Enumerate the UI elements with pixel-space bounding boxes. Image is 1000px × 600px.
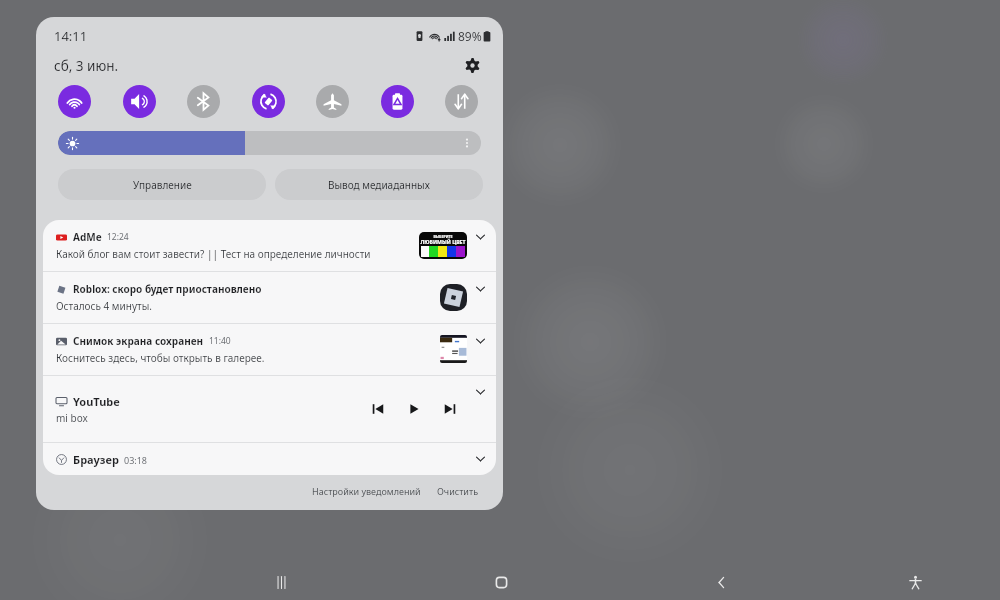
staticText: Снимок экрана сохранен	[73, 334, 204, 348]
staticText: Осталось 4 минуты.	[56, 299, 152, 313]
button[interactable]: Play	[403, 398, 425, 420]
button[interactable]: Вывод медиаданных	[275, 169, 483, 200]
staticText: 12:24	[107, 231, 129, 243]
staticText: Вывод медиаданных	[328, 178, 430, 192]
button[interactable]: Sound	[123, 85, 156, 118]
button[interactable]: Expand	[470, 227, 490, 247]
staticText: ЛЮБИМЫЙ ЦВЕТ	[419, 238, 467, 245]
button[interactable]: Back	[703, 564, 739, 600]
button[interactable]: Браузер	[43, 443, 496, 475]
button[interactable]: Settings	[460, 53, 485, 78]
staticText: YouTube	[73, 394, 120, 409]
button[interactable]: Expand	[470, 279, 490, 299]
button[interactable]: Airplane mode	[316, 85, 349, 118]
staticText: AdMe	[73, 230, 102, 244]
staticText: 89%	[458, 28, 482, 44]
staticText: Очистить	[437, 485, 479, 497]
button[interactable]: Previous	[367, 398, 389, 420]
staticText: Настройки уведомлений	[312, 485, 421, 497]
staticText: 11:40	[209, 335, 231, 347]
button[interactable]: Brightness	[58, 131, 481, 155]
staticText: mi box	[56, 411, 88, 425]
button[interactable]: Next	[439, 398, 461, 420]
button[interactable]: Power saving	[381, 85, 414, 118]
staticText: Коснитесь здесь, чтобы открыть в галерее…	[56, 351, 265, 365]
staticText: Браузер	[73, 452, 119, 467]
button[interactable]: Настройки уведомлений	[308, 482, 425, 500]
button[interactable]: Очистить	[433, 482, 483, 500]
button[interactable]: Recent apps	[263, 564, 299, 600]
staticText: ВЫБЕРИТЕ	[419, 234, 467, 239]
button[interactable]: AdMe	[43, 220, 496, 271]
button[interactable]: Expand	[470, 382, 490, 402]
button[interactable]: Accessibility	[897, 564, 933, 600]
staticText: Управление	[133, 178, 192, 192]
button[interactable]: Auto rotate	[252, 85, 285, 118]
button[interactable]: Roblox: скоро будет приостановлено	[43, 272, 496, 323]
staticText: Roblox: скоро будет приостановлено	[73, 282, 262, 296]
button[interactable]: Снимок экрана сохранен	[43, 324, 496, 375]
staticText: 14:11	[54, 27, 88, 45]
button[interactable]: Wi-Fi	[58, 85, 91, 118]
button[interactable]: Управление	[58, 169, 266, 200]
button[interactable]: Home	[483, 564, 519, 600]
staticText: Какой блог вам стоит завести? || Тест на…	[56, 247, 371, 261]
button[interactable]: Bluetooth	[187, 85, 220, 118]
staticText: сб, 3 июн.	[54, 57, 119, 75]
button[interactable]: Mobile data	[445, 85, 478, 118]
button[interactable]: YouTube	[43, 376, 496, 442]
button[interactable]: Expand	[470, 331, 490, 351]
staticText: 03:18	[124, 454, 148, 466]
button[interactable]: Expand	[470, 449, 490, 469]
